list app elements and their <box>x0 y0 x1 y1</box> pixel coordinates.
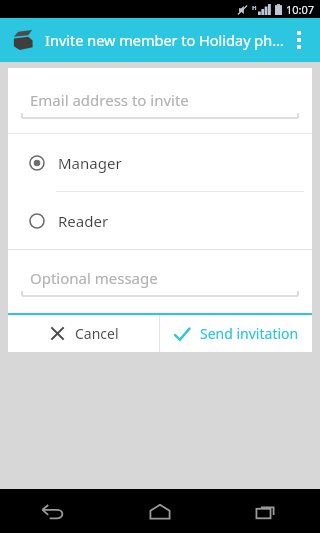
button[interactable]: Back <box>0 489 106 533</box>
staticText: 10:07 <box>286 2 315 17</box>
staticText: Optional message <box>30 268 158 288</box>
button[interactable]: Optional message <box>8 250 312 313</box>
staticText: Invite new member to Holiday pho… <box>45 30 284 50</box>
staticText: Send invitation <box>200 324 299 343</box>
button[interactable]: More options <box>284 18 314 62</box>
button[interactable]: App logo, navigate up <box>9 26 37 54</box>
button[interactable]: Home <box>106 489 213 533</box>
button[interactable]: Send invitation <box>160 315 312 352</box>
button[interactable]: Email address to invite <box>8 68 312 133</box>
staticText: Email address to invite <box>30 90 189 110</box>
button[interactable]: Cancel <box>8 315 159 352</box>
button[interactable]: Recent apps <box>213 489 320 533</box>
staticText: Manager <box>58 153 122 173</box>
staticText: Reader <box>58 211 109 231</box>
button[interactable]: Manager <box>8 134 312 191</box>
staticText: Cancel <box>75 324 119 343</box>
button[interactable]: Reader <box>8 192 312 249</box>
staticText: H <box>252 4 257 12</box>
